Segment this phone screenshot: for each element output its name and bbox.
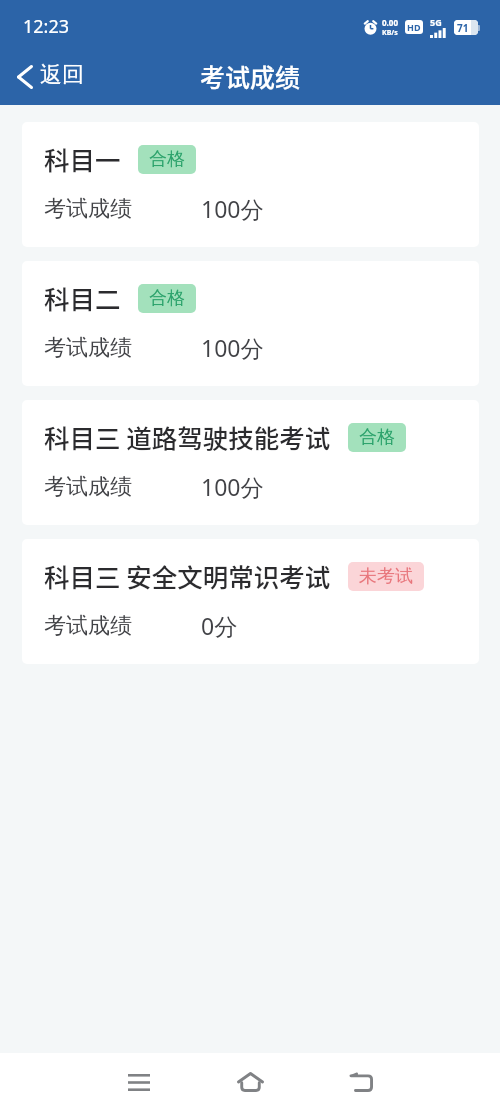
staticText: 71 (457, 21, 469, 35)
staticText: 100分 (201, 193, 264, 224)
button[interactable]: Recent apps (110, 1053, 168, 1111)
staticText: 考试成绩 (44, 473, 132, 501)
staticText: 100分 (201, 471, 264, 502)
staticText: 合格 (149, 148, 185, 171)
button[interactable]: 科目三 道路驾驶技能考试 (22, 400, 479, 525)
staticText: HD (407, 21, 421, 33)
button[interactable]: 科目二 (22, 261, 479, 386)
staticText: 返回 (40, 61, 84, 89)
staticText: 科目三 道路驾驶技能考试 (44, 418, 331, 455)
button[interactable]: 科目三 安全文明常识考试 (22, 539, 479, 664)
staticText: 12:23 (23, 14, 70, 39)
staticText: 科目三 安全文明常识考试 (44, 557, 331, 594)
staticText: 100分 (201, 332, 264, 363)
staticText: 考试成绩 (44, 334, 132, 362)
button[interactable]: Home (221, 1053, 279, 1111)
staticText: 未考试 (359, 565, 413, 588)
staticText: 合格 (359, 426, 395, 449)
staticText: 考试成绩 (44, 195, 132, 223)
staticText: 考试成绩 (44, 612, 132, 640)
staticText: 0.00 (382, 17, 398, 28)
staticText: 0分 (201, 610, 238, 641)
button[interactable]: 科目一 (22, 122, 479, 247)
staticText: 科目一 (44, 140, 121, 177)
button[interactable]: Back (332, 1053, 390, 1111)
staticText: 科目二 (44, 279, 121, 316)
staticText: 合格 (149, 287, 185, 310)
staticText: 5G (430, 16, 442, 28)
staticText: KB/s (382, 28, 398, 38)
staticText: 考试成绩 (200, 58, 301, 94)
button[interactable]: 返回 (0, 55, 98, 99)
